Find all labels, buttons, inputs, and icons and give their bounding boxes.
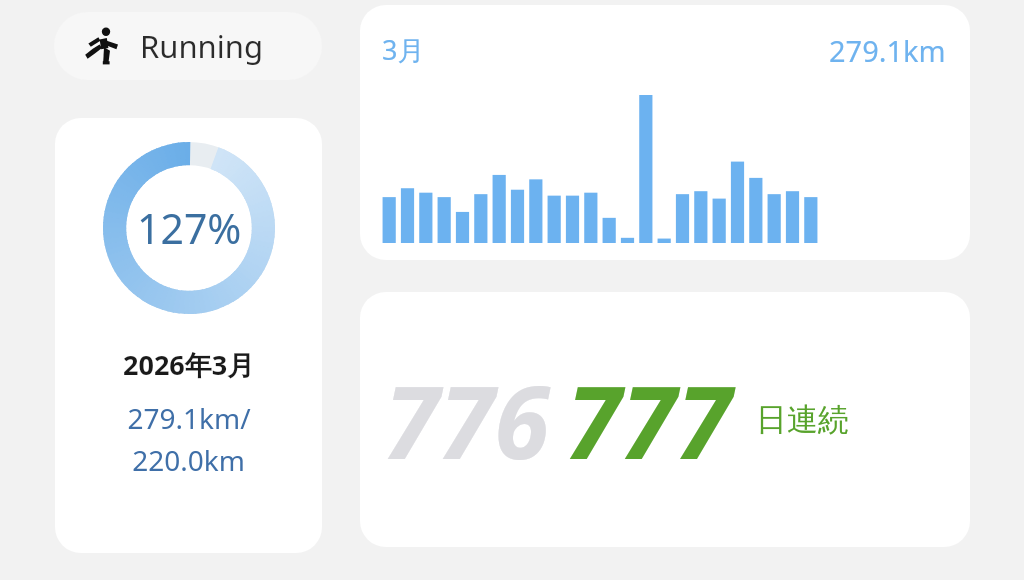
- button[interactable]: 776: [360, 292, 970, 547]
- staticText: 777: [566, 352, 732, 488]
- staticText: 279.1km: [829, 31, 946, 70]
- staticText: 日連続: [756, 400, 849, 439]
- staticText: 220.0km: [132, 441, 245, 479]
- other: Running activity: [82, 26, 122, 66]
- button[interactable]: Running activity: [54, 12, 322, 80]
- button[interactable]: 127%: [55, 118, 322, 553]
- staticText: 127%: [137, 200, 242, 256]
- staticText: 3月: [382, 31, 425, 68]
- staticText: 776: [384, 352, 550, 488]
- button[interactable]: 3月: [360, 5, 970, 260]
- staticText: Running: [140, 25, 263, 67]
- staticText: 2026年3月: [123, 346, 255, 383]
- staticText: 279.1km/: [127, 399, 251, 437]
